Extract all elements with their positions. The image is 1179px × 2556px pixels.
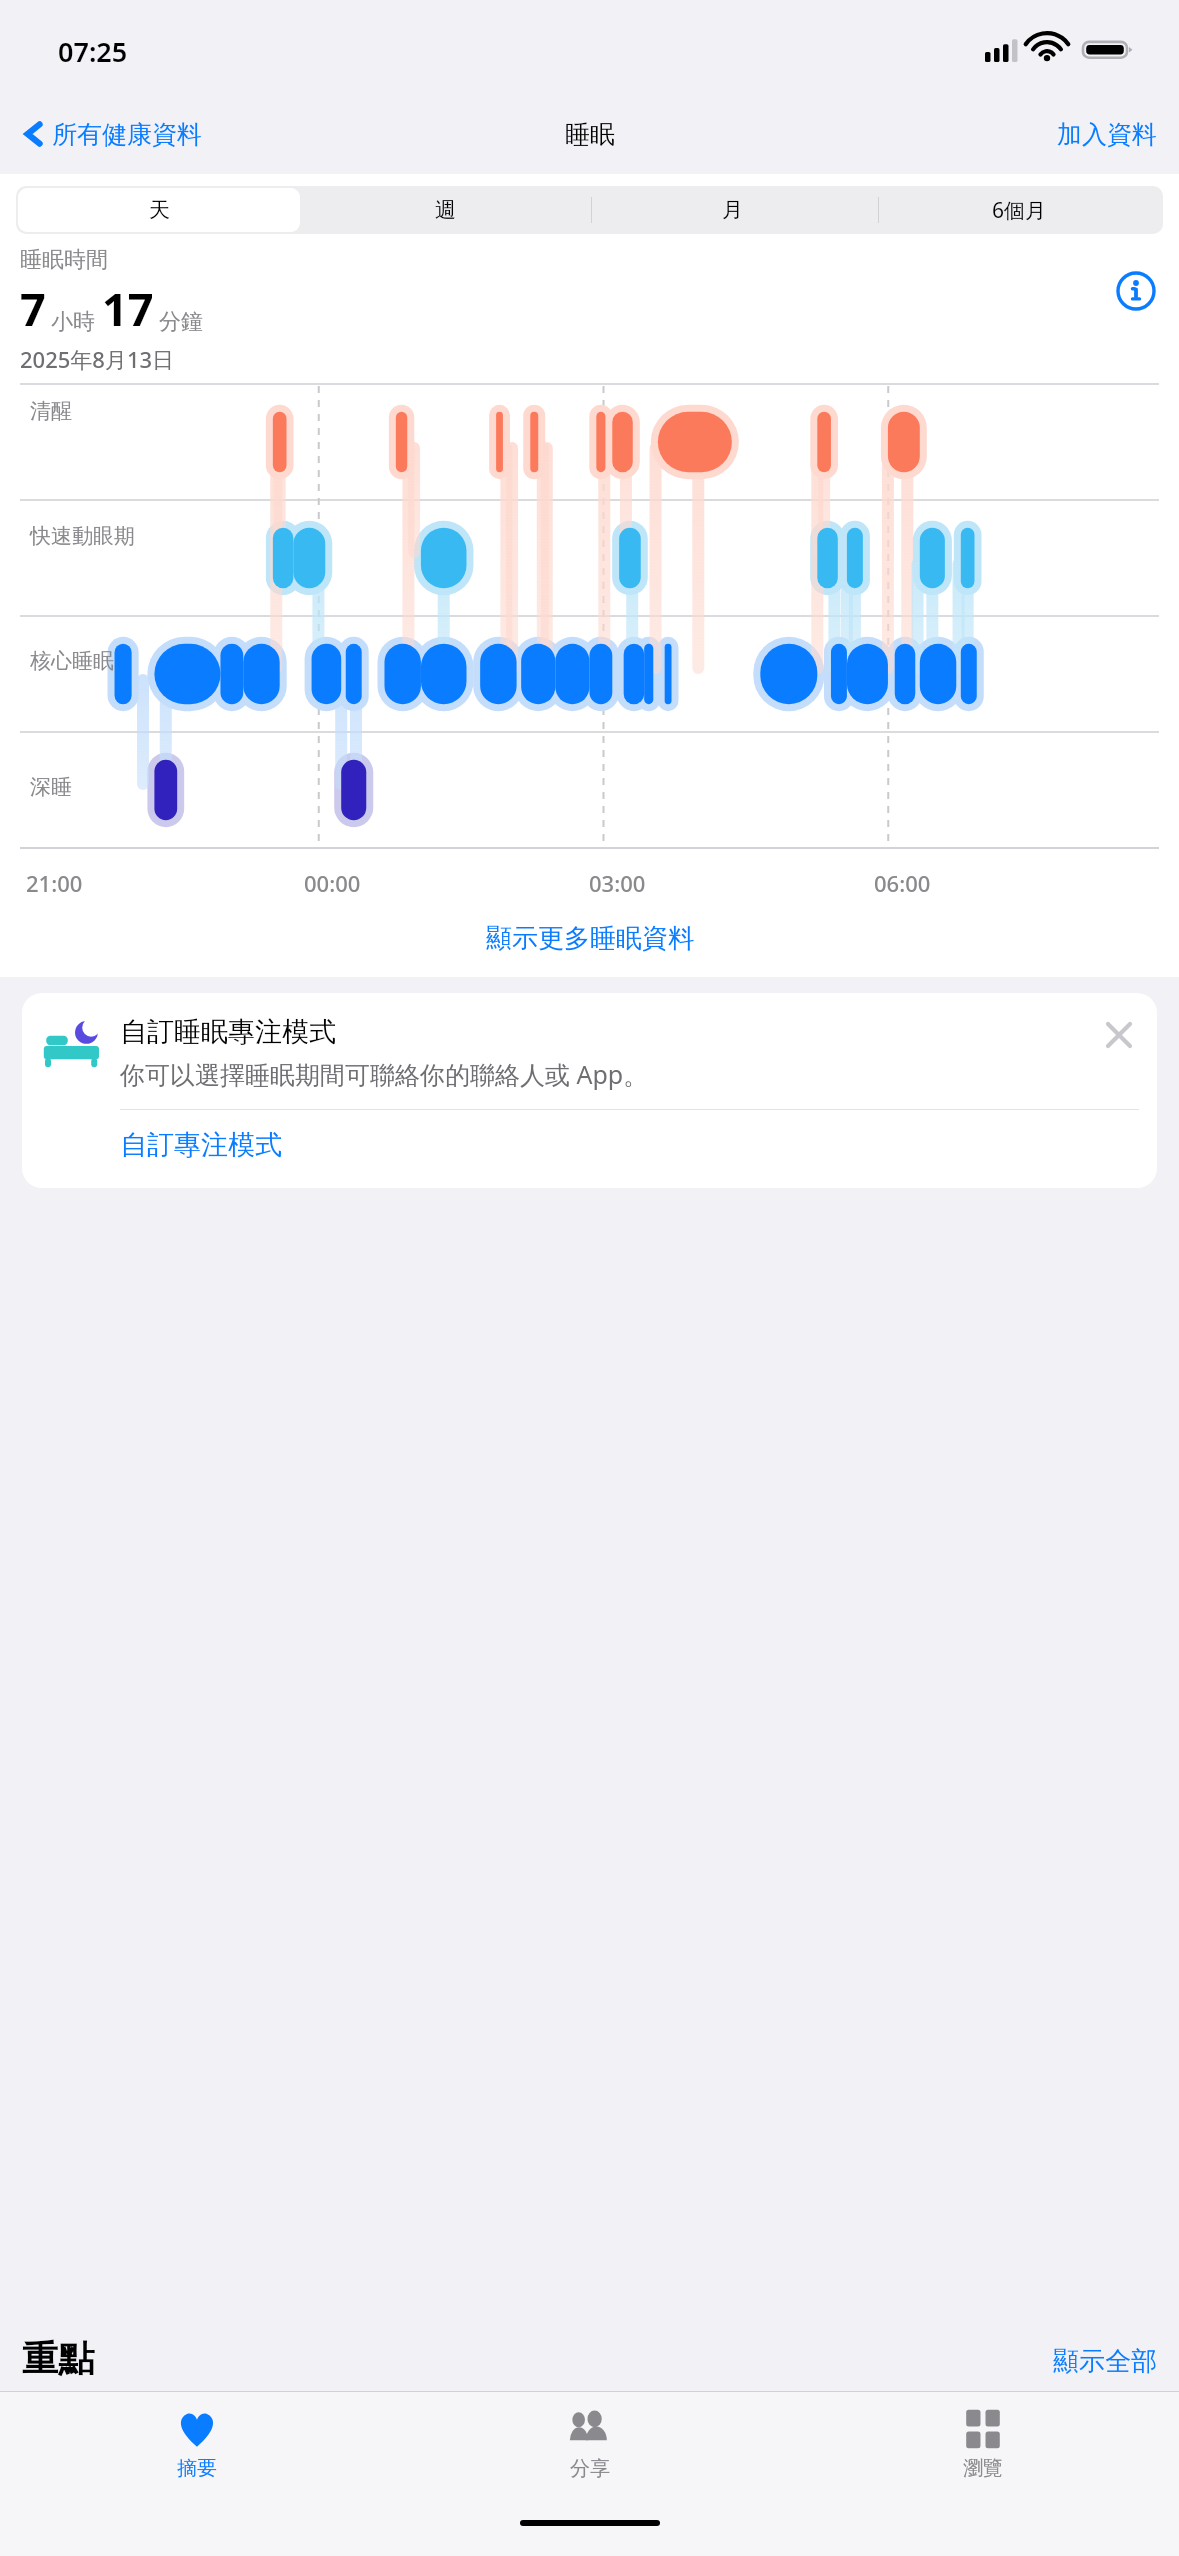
staticText: 小時 xyxy=(51,308,95,336)
staticText: 所有健康資料 xyxy=(52,119,202,150)
button[interactable]: Dismiss xyxy=(1099,1015,1139,1055)
staticText: 你可以選擇睡眠期間可聯絡你的聯絡人或 App。 xyxy=(120,1057,649,1091)
staticText: 07:25 xyxy=(58,33,128,70)
staticText: 自訂睡眠專注模式 xyxy=(120,1015,336,1049)
staticText: 2025年8月13日 xyxy=(20,344,175,374)
button[interactable]: 顯示全部 xyxy=(1053,2345,1157,2381)
staticText: 睡眠 xyxy=(565,119,615,150)
staticText: 分鐘 xyxy=(159,308,203,336)
button[interactable]: 週 xyxy=(304,188,587,232)
staticText: 快速動眼期 xyxy=(30,523,135,549)
staticText: 深睡 xyxy=(30,774,72,800)
staticText: 睡眠時間 xyxy=(20,246,108,274)
staticText: 天 xyxy=(149,197,170,223)
button[interactable]: 顯示更多睡眠資料 xyxy=(474,918,706,959)
button[interactable]: 分享 xyxy=(393,2392,786,2510)
staticText: 分享 xyxy=(570,2456,610,2481)
staticText: 21:00 xyxy=(26,868,83,898)
staticText: 清醒 xyxy=(30,398,72,424)
staticText: 核心睡眠 xyxy=(30,648,114,674)
button[interactable]: 月 xyxy=(591,188,874,232)
button[interactable]: 加入資料 xyxy=(1057,119,1157,150)
staticText: 03:00 xyxy=(589,868,646,898)
staticText: 06:00 xyxy=(874,868,931,898)
button[interactable]: 瀏覽 xyxy=(786,2392,1179,2510)
staticText: 摘要 xyxy=(177,2456,217,2481)
staticText: 7 xyxy=(20,278,46,339)
button[interactable]: About sleep data xyxy=(1113,268,1159,314)
button[interactable]: 所有健康資料 xyxy=(18,114,208,154)
staticText: 00:00 xyxy=(304,868,361,898)
staticText: 週 xyxy=(435,197,456,223)
staticText: 自訂專注模式 xyxy=(120,1128,282,1162)
button[interactable]: 摘要 xyxy=(0,2392,393,2510)
staticText: 6個月 xyxy=(992,196,1047,225)
button[interactable]: 天 xyxy=(18,188,300,232)
staticText: 月 xyxy=(722,197,743,223)
button[interactable]: 自訂專注模式 xyxy=(120,1110,1139,1180)
button[interactable]: 6個月 xyxy=(878,188,1161,232)
staticText: 17 xyxy=(102,278,154,339)
staticText: 重點 xyxy=(22,2336,94,2381)
staticText: 瀏覽 xyxy=(963,2456,1003,2481)
